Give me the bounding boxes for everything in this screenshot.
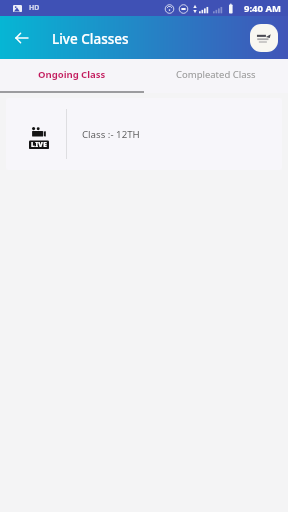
staticText: Class :- 12TH <box>82 128 140 141</box>
staticText: 9:40 AM <box>244 2 281 15</box>
staticText: LIVE <box>31 140 48 149</box>
button[interactable]: Back <box>7 24 35 52</box>
button[interactable]: LIVE <box>6 98 282 170</box>
button[interactable]: Compleated Class <box>144 59 288 93</box>
staticText: Compleated Class <box>176 68 256 81</box>
button[interactable]: Profile <box>250 24 278 52</box>
button[interactable]: Ongoing Class <box>0 59 144 93</box>
staticText: Ongoing Class <box>38 68 106 81</box>
staticText: Live Classes <box>52 30 129 48</box>
staticText: HD <box>29 3 40 13</box>
